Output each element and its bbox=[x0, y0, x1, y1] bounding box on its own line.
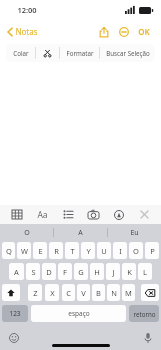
staticText: M bbox=[125, 288, 132, 298]
button[interactable]: S bbox=[26, 263, 40, 280]
button[interactable]: C bbox=[62, 284, 75, 301]
staticText: Y bbox=[86, 246, 91, 256]
staticText: U bbox=[101, 246, 107, 256]
button[interactable]: Buscar Seleção bbox=[100, 44, 155, 62]
button[interactable]: L bbox=[138, 263, 152, 280]
button[interactable]: Y bbox=[81, 242, 95, 259]
button[interactable]: T bbox=[65, 242, 79, 259]
button[interactable]: W bbox=[17, 242, 31, 259]
staticText: Colar bbox=[13, 49, 29, 57]
button[interactable]: M bbox=[122, 284, 135, 301]
button[interactable]: A bbox=[54, 224, 107, 241]
button[interactable]: I bbox=[113, 242, 127, 259]
button[interactable]: H bbox=[90, 263, 104, 280]
staticText: P bbox=[150, 246, 155, 256]
staticText: Aa bbox=[37, 209, 48, 221]
button[interactable]: F bbox=[58, 263, 72, 280]
staticText: 12:00 bbox=[17, 5, 37, 15]
button[interactable]: N bbox=[107, 284, 120, 301]
staticText: A bbox=[14, 267, 19, 277]
staticText: O bbox=[133, 246, 139, 256]
button[interactable]: Eu bbox=[108, 224, 161, 241]
button[interactable]: U bbox=[97, 242, 111, 259]
staticText: C bbox=[66, 288, 71, 298]
staticText: F bbox=[63, 267, 67, 277]
button[interactable]: R bbox=[49, 242, 63, 259]
button[interactable]: A bbox=[9, 263, 24, 280]
staticText: B bbox=[96, 288, 101, 298]
button[interactable]: Q bbox=[2, 242, 15, 259]
button[interactable]: D bbox=[42, 263, 56, 280]
staticText: Q bbox=[6, 246, 12, 256]
staticText: X bbox=[50, 288, 55, 298]
button[interactable]: OK bbox=[135, 24, 153, 39]
button[interactable]: Câmera bbox=[84, 206, 102, 223]
staticText: OK bbox=[138, 26, 150, 37]
staticText: Eu bbox=[130, 228, 139, 238]
button[interactable]: Cortar bbox=[36, 44, 59, 62]
staticText: R bbox=[54, 246, 59, 256]
staticText: G bbox=[78, 267, 84, 277]
button[interactable]: O bbox=[129, 242, 143, 259]
staticText: Z bbox=[33, 288, 38, 298]
button[interactable]: K bbox=[122, 263, 136, 280]
button[interactable]: Compartilhar bbox=[95, 23, 112, 40]
button[interactable]: E bbox=[33, 242, 47, 259]
staticText: N bbox=[111, 288, 117, 298]
staticText: W bbox=[21, 246, 28, 256]
button[interactable]: Marcação bbox=[110, 206, 128, 223]
button[interactable]: P bbox=[145, 242, 159, 259]
staticText: O bbox=[24, 228, 30, 238]
staticText: 123 bbox=[9, 309, 21, 318]
button[interactable]: retorno bbox=[129, 305, 159, 322]
staticText: V bbox=[81, 288, 86, 298]
button[interactable]: G bbox=[74, 263, 88, 280]
button[interactable]: Mais bbox=[115, 23, 132, 40]
button[interactable]: B bbox=[92, 284, 105, 301]
button[interactable]: Emoji bbox=[6, 330, 21, 345]
button[interactable]: Ditado bbox=[140, 330, 155, 345]
button[interactable]: Lista bbox=[59, 206, 77, 223]
button[interactable]: Tabela bbox=[8, 206, 26, 223]
button[interactable]: Notas bbox=[5, 24, 40, 39]
staticText: Buscar Seleção bbox=[106, 49, 150, 57]
staticText: L bbox=[143, 267, 147, 277]
button[interactable]: J bbox=[106, 263, 120, 280]
staticText: K bbox=[127, 267, 132, 277]
staticText: E bbox=[38, 246, 43, 256]
staticText: J bbox=[112, 267, 115, 277]
staticText: D bbox=[46, 267, 52, 277]
staticText: espaço bbox=[68, 309, 90, 318]
button[interactable]: Maiúsculas bbox=[2, 284, 20, 301]
button[interactable]: Apagar bbox=[141, 284, 159, 301]
button[interactable]: 123 bbox=[2, 305, 28, 322]
staticText: retorno bbox=[133, 310, 156, 318]
button[interactable]: Colar bbox=[6, 44, 35, 62]
button[interactable]: Formato de texto bbox=[33, 206, 51, 223]
button[interactable]: V bbox=[77, 284, 90, 301]
staticText: S bbox=[31, 267, 36, 277]
staticText: Notas bbox=[15, 26, 38, 37]
button[interactable]: Fechar teclado bbox=[135, 206, 153, 223]
button[interactable]: Z bbox=[28, 284, 42, 301]
staticText: Formatar bbox=[66, 49, 94, 57]
button[interactable]: O bbox=[0, 224, 53, 241]
staticText: H bbox=[94, 267, 100, 277]
staticText: T bbox=[70, 246, 75, 256]
button[interactable]: espaço bbox=[31, 305, 126, 322]
staticText: I bbox=[119, 246, 122, 256]
button[interactable]: X bbox=[45, 284, 59, 301]
button[interactable]: Formatar bbox=[60, 44, 99, 62]
staticText: A bbox=[78, 228, 83, 238]
